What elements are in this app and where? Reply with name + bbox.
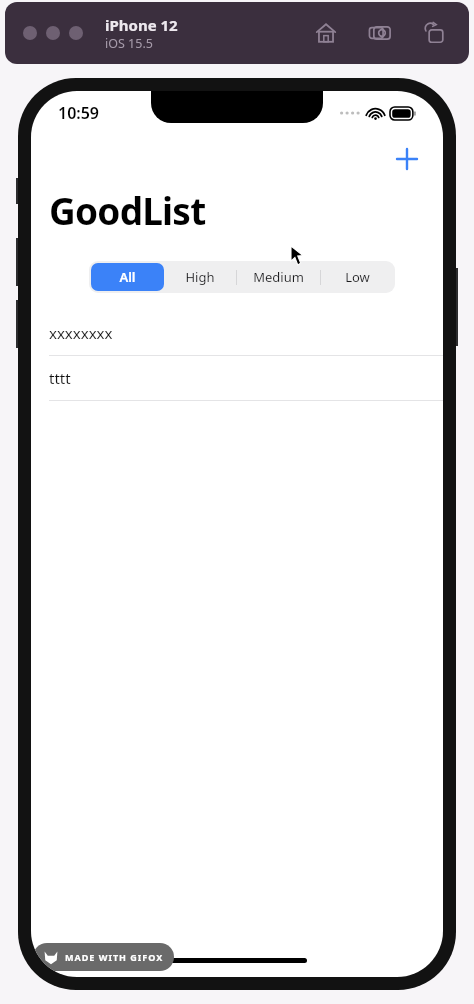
- button[interactable]: All: [91, 263, 164, 291]
- staticText: 10:59: [58, 102, 100, 124]
- button[interactable]: High: [164, 263, 236, 291]
- button[interactable]: Home: [309, 16, 343, 50]
- button[interactable]: [23, 26, 37, 40]
- staticText: Low: [345, 268, 370, 286]
- staticText: Medium: [253, 268, 304, 286]
- staticText: tttt: [49, 368, 71, 388]
- staticText: High: [185, 268, 215, 286]
- staticText: GoodList: [49, 185, 206, 235]
- button[interactable]: Medium: [237, 263, 320, 291]
- button[interactable]: Add item: [385, 137, 429, 181]
- button[interactable]: tttt: [31, 356, 443, 401]
- button[interactable]: Rotate: [417, 16, 451, 50]
- staticText: xxxxxxxx: [49, 323, 113, 343]
- staticText: iPhone 12: [105, 15, 178, 35]
- button[interactable]: xxxxxxxx: [31, 311, 443, 356]
- button[interactable]: Screenshot: [363, 16, 397, 50]
- staticText: MADE WITH GIFOX: [65, 951, 164, 963]
- button[interactable]: [46, 26, 60, 40]
- staticText: iOS 15.5: [105, 35, 153, 52]
- button[interactable]: [69, 26, 83, 40]
- staticText: All: [119, 268, 136, 286]
- button[interactable]: Low: [321, 263, 393, 291]
